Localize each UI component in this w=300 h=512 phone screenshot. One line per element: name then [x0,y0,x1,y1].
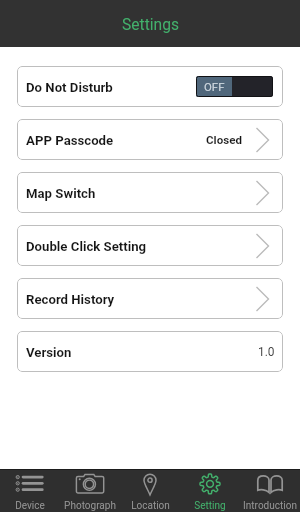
staticText: Double Click Setting [26,239,147,254]
button[interactable]: Do Not Disturb switch, off [196,76,273,97]
staticText: Do Not Disturb [26,80,113,95]
button[interactable]: Do Not Disturb [17,66,283,107]
button[interactable]: Record History [17,278,283,319]
button[interactable]: Photograph [60,470,120,512]
button[interactable]: Device [0,470,60,512]
button[interactable]: Map Switch [17,172,283,213]
staticText: Device [15,500,45,512]
button[interactable]: Location [120,470,180,512]
staticText: Closed [206,133,242,147]
staticText: Photograph [64,500,116,512]
staticText: OFF [204,80,225,93]
staticText: Introduction [243,500,297,512]
staticText: Location [131,500,170,512]
staticText: 1.0 [258,345,275,359]
staticText: Version [26,345,72,360]
button[interactable]: APP Passcode [17,119,283,160]
staticText: Map Switch [26,186,96,201]
button[interactable]: Version [17,331,283,372]
staticText: Setting [194,500,226,512]
staticText: APP Passcode [26,133,114,148]
button[interactable]: Double Click Setting [17,225,283,266]
button[interactable]: Setting [180,470,240,512]
staticText: Settings [122,16,179,34]
button[interactable]: Introduction [240,470,300,512]
staticText: Record History [26,292,115,307]
